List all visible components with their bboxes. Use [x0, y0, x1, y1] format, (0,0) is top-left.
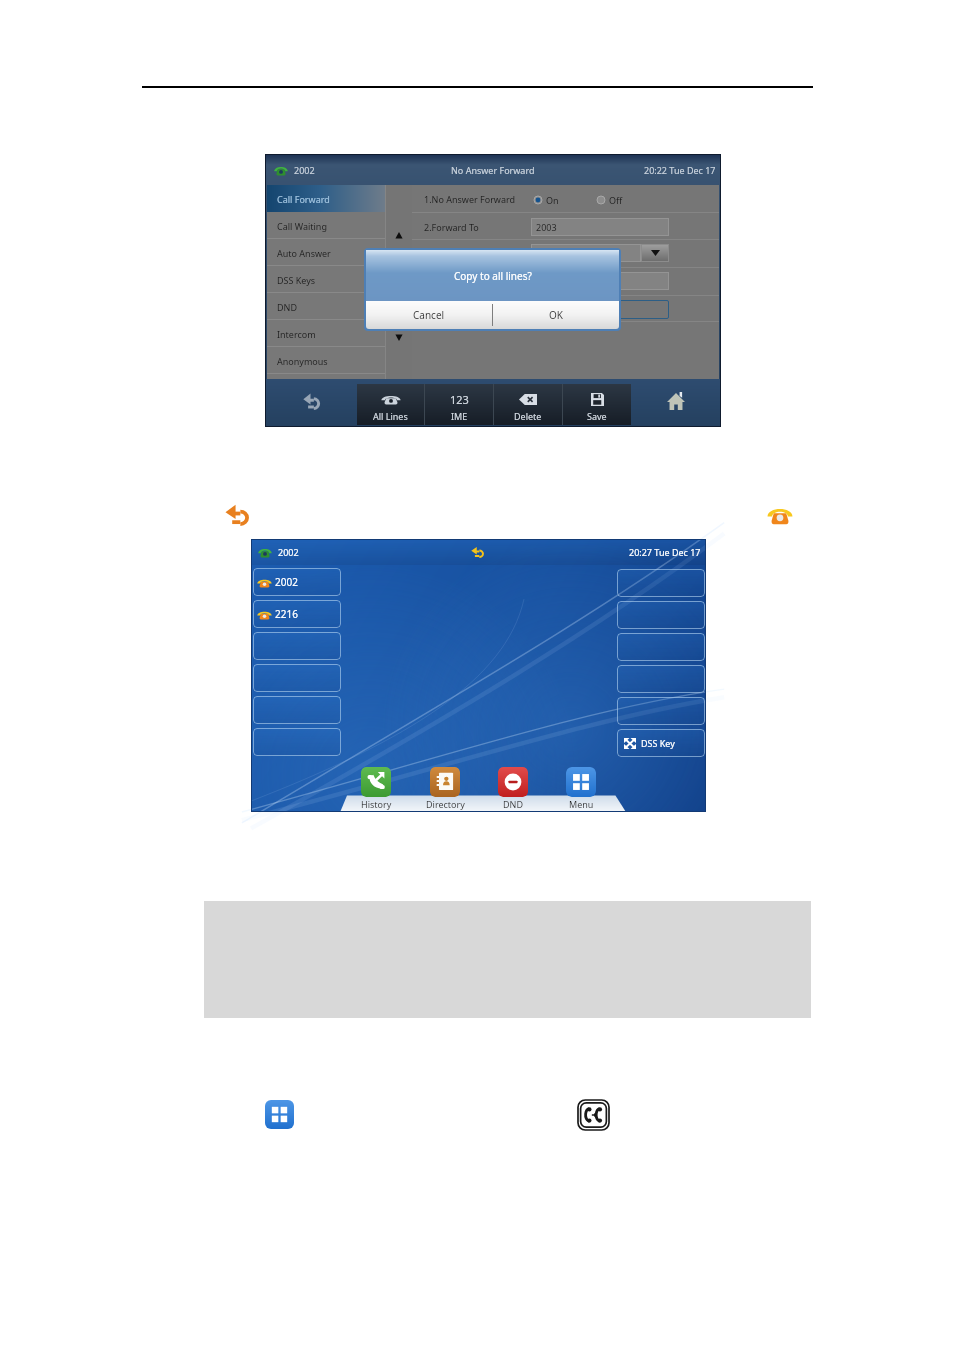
button[interactable]: History [346, 767, 406, 810]
button[interactable]: 2003 [531, 218, 669, 236]
staticText: 2002 [278, 546, 299, 558]
button[interactable] [617, 569, 705, 597]
staticText: DND [503, 798, 523, 810]
button[interactable]: Back [471, 546, 484, 558]
staticText: Delete [514, 410, 542, 422]
staticText: Menu [569, 798, 594, 810]
button[interactable]: Call Forward [577, 1099, 610, 1131]
button[interactable]: DSS Key [617, 729, 705, 757]
staticText: 1.No Answer Forward [424, 193, 516, 205]
button[interactable] [531, 300, 669, 319]
staticText: DND [277, 301, 297, 313]
staticText: Call Waiting [277, 220, 327, 232]
button[interactable]: Menu [551, 767, 611, 810]
staticText: DSS Keys [277, 274, 316, 286]
button[interactable]: Menu [265, 1100, 294, 1129]
button[interactable]: Directory [415, 767, 475, 810]
button[interactable]: Call Forward [267, 185, 385, 212]
staticText: 20:22 Tue Dec 17 [644, 164, 716, 176]
staticText: No Answer Forward [451, 164, 535, 176]
staticText: Cancel [413, 308, 445, 322]
button[interactable]: Back [225, 503, 249, 526]
button[interactable]: Auto Answer [267, 239, 385, 266]
staticText: History [361, 798, 392, 810]
button[interactable]: 123 [425, 384, 493, 425]
button[interactable]: Delete [494, 384, 562, 425]
staticText: 2003 [536, 221, 557, 233]
button[interactable]: DND [483, 767, 543, 810]
button[interactable] [531, 244, 641, 262]
button[interactable]: Home [667, 392, 685, 410]
button[interactable]: Back [303, 392, 320, 410]
staticText: Directory [426, 798, 465, 810]
button[interactable]: Intercom [267, 320, 385, 347]
button[interactable]: Anonymous [267, 347, 385, 374]
button[interactable]: DND [267, 293, 385, 320]
staticText: 2.Forward To [424, 221, 479, 233]
button[interactable] [253, 632, 341, 660]
button[interactable] [617, 697, 705, 725]
staticText: On [546, 194, 559, 206]
button[interactable]: OK [493, 301, 619, 329]
button[interactable]: Cancel [366, 301, 492, 329]
staticText: All Lines [373, 410, 408, 422]
staticText: Intercom [277, 328, 316, 340]
button[interactable]: All Lines [357, 384, 424, 425]
button[interactable]: DSS Keys [267, 266, 385, 293]
staticText: 2216 [275, 607, 298, 621]
button[interactable]: 2002 [253, 568, 341, 596]
staticText: 20:27 Tue Dec 17 [629, 546, 701, 558]
staticText: 2002 [275, 575, 298, 589]
button[interactable] [253, 696, 341, 724]
button[interactable] [531, 272, 669, 290]
staticText: Call Forward [277, 193, 330, 205]
button[interactable] [253, 664, 341, 692]
staticText: 123 [450, 392, 469, 406]
button[interactable]: Save [563, 384, 631, 425]
button[interactable] [617, 633, 705, 661]
button[interactable]: Line key [767, 504, 793, 525]
staticText: Copy to all lines? [454, 269, 532, 283]
staticText: Off [609, 194, 623, 206]
button[interactable]: Dropdown [641, 244, 669, 262]
staticText: OK [549, 308, 563, 322]
staticText: Save [587, 410, 607, 422]
staticText: Anonymous [277, 355, 328, 367]
staticText: Auto Answer [277, 247, 331, 259]
button[interactable]: Call Waiting [267, 212, 385, 239]
button[interactable] [617, 665, 705, 693]
button[interactable] [253, 728, 341, 756]
staticText: DSS Key [641, 737, 675, 749]
button[interactable] [617, 601, 705, 629]
button[interactable]: 2216 [253, 600, 341, 628]
staticText: IME [451, 410, 468, 422]
staticText: 2002 [294, 164, 315, 176]
